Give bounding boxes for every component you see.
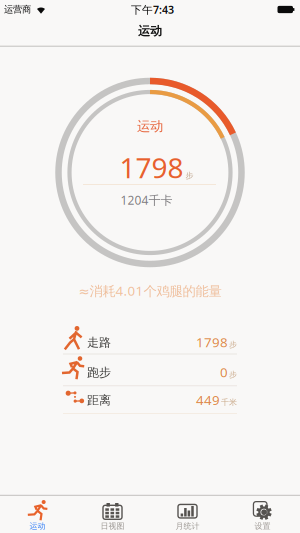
staticText: 日视图 <box>100 521 124 531</box>
staticText: 0 <box>220 363 228 381</box>
button[interactable]: 月统计 <box>150 495 225 533</box>
staticText: 运营商 <box>4 4 31 15</box>
staticText: 千米 <box>221 397 237 407</box>
staticText: 下午7:43 <box>131 2 174 17</box>
staticText: 设置 <box>254 521 270 531</box>
staticText: 步 <box>229 340 237 349</box>
staticText: 449 <box>196 391 220 409</box>
button[interactable]: 设置 <box>225 495 300 533</box>
staticText: 距离 <box>87 393 111 408</box>
staticText: 步 <box>229 370 237 379</box>
button[interactable]: 日视图 <box>75 495 150 533</box>
button[interactable]: 运动 <box>0 495 75 533</box>
staticText: 月统计 <box>175 521 199 531</box>
staticText: 1798 <box>196 333 228 351</box>
staticText: 运动 <box>138 24 162 38</box>
staticText: 1798 <box>119 149 183 186</box>
staticText: 走路 <box>87 335 111 350</box>
staticText: 1204千卡 <box>120 192 172 208</box>
staticText: 步 <box>185 171 193 181</box>
staticText: 运动 <box>29 521 45 531</box>
staticText: 运动 <box>137 118 163 134</box>
staticText: ≈消耗4.01个鸡腿的能量 <box>78 282 221 299</box>
staticText: 跑步 <box>87 365 111 380</box>
